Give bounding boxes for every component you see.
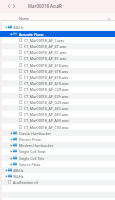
button[interactable]: 96kHz (0, 173, 115, 179)
staticText: Modern Humbucker (19, 143, 54, 148)
button[interactable]: Source Piezo (0, 161, 115, 167)
staticText: CT_Mar00018_AP_483.wav (24, 106, 69, 111)
button[interactable]: Electric Piezo (0, 136, 115, 142)
button[interactable]: CT_Mar00018_AP_A18.wav (0, 80, 115, 86)
button[interactable]: Forward (12, 3, 16, 9)
button[interactable]: Back (7, 3, 11, 9)
button[interactable]: CT_Mar00018_AP_683.wav (0, 111, 115, 117)
staticText: Source Piezo (19, 162, 41, 167)
button[interactable]: CT_Mar00018_AP_G29.wav (0, 99, 115, 105)
staticText: Mar00018 AcuiR (28, 3, 62, 9)
button[interactable]: CT_Mar00018_AP_E29.wav (0, 93, 115, 99)
button[interactable]: Modern Humbucker (0, 142, 115, 148)
button[interactable]: CT_Mar00018_AP_418.wav (0, 62, 115, 68)
staticText: CT_Mar00018_AP_G29.wav (24, 100, 69, 105)
staticText: AcuReadme.rtf (13, 180, 39, 185)
button[interactable]: Single Coil Strat (0, 148, 115, 154)
staticText: CT_Mar00018_AP_818.wav (24, 75, 69, 80)
button[interactable]: CT_Mar00018_AP_A00.wav (0, 117, 115, 123)
staticText: CT_Mar00018_AP_67.wav (24, 50, 67, 55)
staticText: Single Coil Tele (19, 156, 45, 161)
button[interactable]: CT_Mar00018_AP_C00.wav (0, 124, 115, 130)
staticText: CT_Mar00018_AP_618.wav (24, 69, 69, 74)
button[interactable]: CT_Mar00018_AP_C29.wav (0, 86, 115, 92)
staticText: Acoustic Piano (19, 32, 44, 37)
staticText: 96kHz (13, 174, 24, 179)
staticText: Name (19, 16, 30, 21)
staticText: CT_Mar00018_AP_A00.wav (24, 118, 69, 123)
button[interactable]: CT_Mar00018_AP_618.wav (0, 68, 115, 74)
staticText: CT_Mar00018_AP_87.wav (24, 56, 67, 61)
staticText: 48kHz (13, 168, 24, 173)
button[interactable]: Acoustic Piano (0, 31, 115, 37)
button[interactable]: Classic Humbucker (0, 130, 115, 136)
button[interactable]: CT_Mar00018_AP_87.wav (0, 55, 115, 61)
button[interactable]: CT_Mar00018_AP_818.wav (0, 74, 115, 80)
button[interactable]: CT_Mar00018_AP_67.wav (0, 49, 115, 55)
staticText: CT_Mar00018_AP_A18.wav (24, 81, 69, 86)
staticText: 44kHz (13, 25, 24, 30)
button[interactable]: 48kHz (0, 167, 115, 173)
button[interactable]: 44kHz (0, 24, 115, 30)
staticText: CT_Mar00018_AP_683.wav (24, 112, 69, 117)
staticText: CT_Mar00018_AP_C00.wav (24, 125, 69, 130)
button[interactable]: Sort by name (106, 16, 112, 21)
staticText: Electric Piezo (19, 137, 42, 142)
staticText: Classic Humbucker (19, 131, 52, 136)
button[interactable]: Single Coil Tele (0, 155, 115, 161)
button[interactable]: CT_Mar00018_AP_483.wav (0, 105, 115, 111)
staticText: CT_Mar00018_AP_C29.wav (24, 87, 69, 92)
staticText: CT_Mar00018_AP_7.wav (24, 38, 65, 43)
staticText: Single Coil Strat (19, 149, 46, 154)
button[interactable]: AcuReadme.rtf (0, 179, 115, 185)
button[interactable]: CT_Mar00018_AP_7.wav (0, 37, 115, 43)
staticText: CT_Mar00018_AP_E29.wav (24, 94, 69, 99)
staticText: CT_Mar00018_AP_47.wav (24, 44, 67, 49)
staticText: CT_Mar00018_AP_418.wav (24, 63, 69, 68)
button[interactable]: CT_Mar00018_AP_47.wav (0, 43, 115, 49)
